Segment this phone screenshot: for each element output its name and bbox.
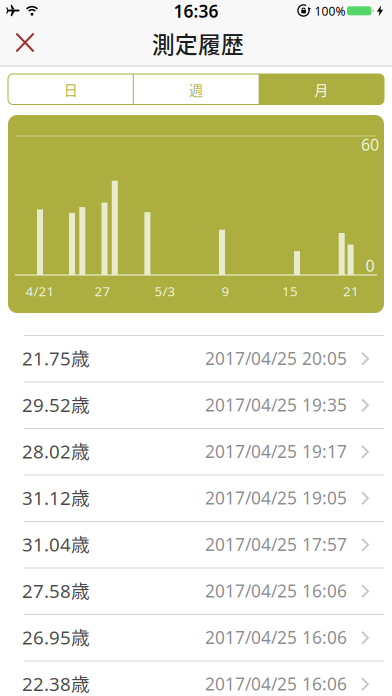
staticText: 16:36 <box>173 0 218 22</box>
button[interactable]: 21.75 <box>0 336 392 382</box>
staticText: 21 <box>343 282 359 300</box>
staticText: 月 <box>314 79 328 99</box>
staticText: 2017/04/25 20:05 <box>205 347 347 370</box>
staticText: 28.02 <box>22 439 71 464</box>
staticText: 2017/04/25 19:35 <box>205 393 347 416</box>
staticText: 0 <box>365 255 374 276</box>
staticText: 100% <box>314 3 345 19</box>
staticText: 歳 <box>71 623 90 650</box>
staticText: 2017/04/25 16:06 <box>205 672 347 695</box>
staticText: 22.38 <box>22 671 71 696</box>
button[interactable]: 週 <box>133 74 259 104</box>
button[interactable]: 31.04 <box>0 522 392 568</box>
button[interactable]: Close <box>13 30 37 54</box>
staticText: 歳 <box>71 390 90 417</box>
staticText: 週 <box>189 79 203 99</box>
button[interactable]: 日 <box>8 74 133 104</box>
staticText: 60 <box>361 134 379 155</box>
staticText: 5/3 <box>154 282 175 300</box>
button[interactable]: 26.95 <box>0 615 392 661</box>
staticText: 31.04 <box>22 532 71 557</box>
staticText: 2017/04/25 19:05 <box>205 486 347 509</box>
staticText: 歳 <box>71 530 90 557</box>
button[interactable]: 29.52 <box>0 382 392 429</box>
staticText: 歳 <box>71 437 90 464</box>
staticText: 4/21 <box>25 282 54 300</box>
staticText: 27.58 <box>22 578 71 603</box>
button[interactable]: 22.38 <box>0 661 392 696</box>
staticText: 歳 <box>71 344 90 371</box>
staticText: 31.12 <box>22 485 71 510</box>
staticText: 歳 <box>71 576 90 603</box>
staticText: 21.75 <box>22 346 71 371</box>
staticText: 2017/04/25 19:17 <box>205 440 347 463</box>
staticText: 26.95 <box>22 625 71 650</box>
button[interactable]: 28.02 <box>0 429 392 475</box>
staticText: 9 <box>221 282 229 300</box>
staticText: 日 <box>64 79 78 99</box>
staticText: 2017/04/25 16:06 <box>205 579 347 602</box>
staticText: 2017/04/25 17:57 <box>205 533 347 556</box>
staticText: 15 <box>282 282 298 300</box>
staticText: 2017/04/25 16:06 <box>205 626 347 649</box>
staticText: 歳 <box>71 669 90 696</box>
staticText: 歳 <box>71 483 90 510</box>
staticText: 29.52 <box>22 392 71 417</box>
staticText: 測定履歴 <box>152 27 244 59</box>
button[interactable]: 月 <box>259 74 384 104</box>
staticText: 27 <box>94 282 110 300</box>
button[interactable]: 31.12 <box>0 475 392 522</box>
button[interactable]: 27.58 <box>0 568 392 615</box>
